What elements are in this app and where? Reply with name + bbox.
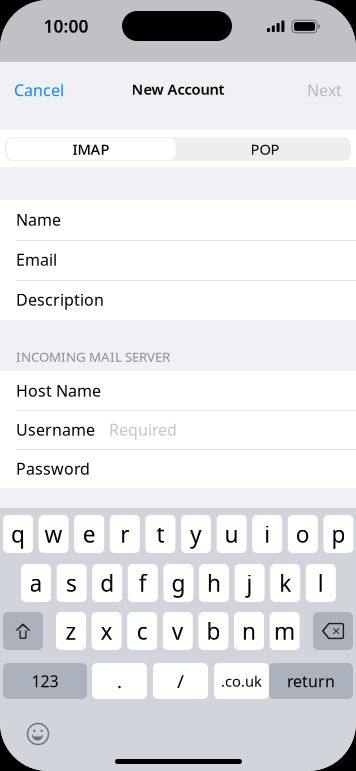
staticText: Username: [16, 419, 95, 440]
button[interactable]: Next: [276, 78, 342, 102]
button[interactable]: j: [235, 564, 265, 602]
staticText: return: [287, 670, 335, 692]
staticText: x: [101, 616, 113, 646]
staticText: Description: [16, 289, 104, 310]
button[interactable]: e: [74, 515, 104, 553]
button[interactable]: Shift: [3, 612, 43, 650]
button[interactable]: m: [270, 612, 300, 650]
staticText: IMAP: [72, 139, 109, 159]
button[interactable]: Username: [0, 410, 356, 449]
button[interactable]: return: [269, 663, 353, 699]
staticText: v: [172, 616, 184, 646]
staticText: .co.uk: [221, 671, 262, 691]
staticText: o: [296, 519, 310, 549]
staticText: e: [83, 519, 96, 549]
staticText: /: [177, 669, 184, 693]
button[interactable]: 123: [3, 663, 87, 699]
button[interactable]: z: [56, 612, 86, 650]
staticText: h: [207, 568, 221, 598]
staticText: Email: [16, 249, 57, 270]
button[interactable]: POP: [180, 138, 349, 160]
button[interactable]: w: [39, 515, 69, 553]
button[interactable]: f: [128, 564, 158, 602]
button[interactable]: y: [181, 515, 211, 553]
staticText: 10:00: [43, 14, 88, 37]
staticText: y: [190, 519, 202, 549]
button[interactable]: u: [217, 515, 247, 553]
button[interactable]: k: [270, 564, 300, 602]
button[interactable]: v: [163, 612, 193, 650]
button[interactable]: q: [3, 515, 33, 553]
staticText: Required: [109, 419, 177, 440]
staticText: f: [139, 568, 147, 598]
button[interactable]: b: [198, 612, 228, 650]
button[interactable]: IMAP: [6, 138, 175, 160]
staticText: a: [29, 568, 42, 598]
button[interactable]: a: [21, 564, 51, 602]
button[interactable]: s: [57, 564, 87, 602]
staticText: Password: [16, 458, 90, 479]
staticText: q: [11, 519, 25, 549]
staticText: Name: [16, 209, 61, 230]
staticText: 123: [31, 670, 58, 692]
button[interactable]: Email: [0, 240, 356, 279]
staticText: d: [100, 568, 114, 598]
staticText: s: [66, 568, 77, 598]
staticText: p: [331, 519, 345, 549]
button[interactable]: n: [234, 612, 264, 650]
button[interactable]: /: [153, 663, 208, 699]
staticText: Host Name: [16, 380, 101, 401]
button[interactable]: d: [92, 564, 122, 602]
button[interactable]: g: [163, 564, 193, 602]
button[interactable]: Name: [0, 200, 356, 239]
staticText: .: [117, 669, 122, 693]
staticText: Cancel: [14, 79, 64, 101]
button[interactable]: x: [92, 612, 122, 650]
staticText: c: [137, 616, 148, 646]
staticText: g: [171, 568, 185, 598]
staticText: INCOMING MAIL SERVER: [16, 348, 170, 365]
button[interactable]: o: [288, 515, 318, 553]
staticText: i: [264, 519, 270, 549]
staticText: r: [120, 519, 129, 549]
button[interactable]: Emoji keyboard: [27, 723, 49, 745]
staticText: New Account: [131, 79, 224, 99]
button[interactable]: Host Name: [0, 371, 356, 410]
button[interactable]: Delete: [313, 612, 353, 650]
button[interactable]: .: [92, 663, 147, 699]
staticText: j: [247, 568, 253, 598]
staticText: w: [45, 519, 63, 549]
button[interactable]: Description: [0, 280, 356, 319]
button[interactable]: l: [306, 564, 336, 602]
staticText: m: [274, 616, 295, 646]
button[interactable]: c: [127, 612, 157, 650]
button[interactable]: Password: [0, 449, 356, 488]
staticText: b: [206, 616, 220, 646]
staticText: z: [65, 616, 76, 646]
button[interactable]: h: [199, 564, 229, 602]
button[interactable]: p: [323, 515, 353, 553]
staticText: POP: [250, 139, 279, 159]
staticText: u: [225, 519, 239, 549]
button[interactable]: i: [252, 515, 282, 553]
button[interactable]: .co.uk: [214, 663, 269, 699]
staticText: Next: [307, 79, 342, 101]
button[interactable]: t: [145, 515, 175, 553]
staticText: t: [156, 519, 164, 549]
button[interactable]: Cancel: [14, 78, 88, 102]
button[interactable]: r: [110, 515, 140, 553]
staticText: n: [242, 616, 256, 646]
staticText: k: [279, 568, 291, 598]
staticText: l: [318, 568, 324, 598]
